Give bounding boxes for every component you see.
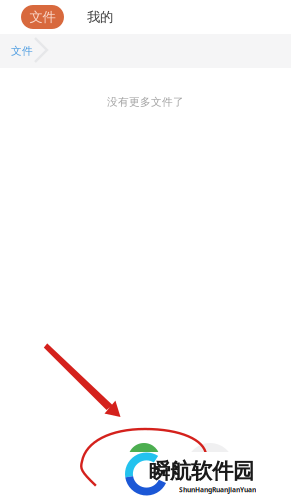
- staticText: 我的: [87, 9, 113, 25]
- button[interactable]: More: [186, 443, 234, 491]
- button[interactable]: 文件: [0, 34, 33, 68]
- button[interactable]: 我的: [80, 5, 120, 29]
- staticText: 瞬航软件园: [149, 458, 254, 484]
- button[interactable]: 文件: [21, 5, 64, 29]
- staticText: 文件: [29, 9, 55, 25]
- staticText: 没有更多文件了: [107, 95, 184, 108]
- button[interactable]: New: [128, 443, 160, 475]
- staticText: ShunHangRuanJianYuan: [179, 485, 256, 494]
- staticText: 文件: [11, 44, 33, 57]
